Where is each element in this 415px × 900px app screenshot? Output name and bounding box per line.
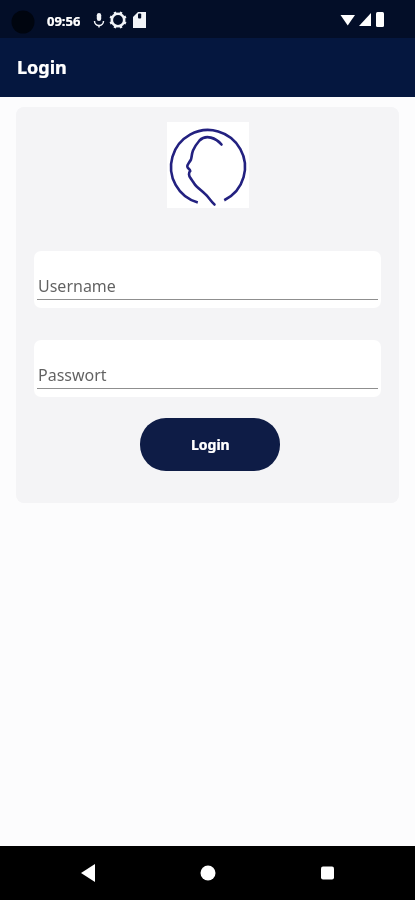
button[interactable]	[139, 846, 277, 900]
button[interactable]	[277, 846, 415, 900]
button[interactable]: Passwort	[34, 340, 381, 397]
staticText: Passwort	[38, 364, 107, 386]
button[interactable]: Username	[34, 251, 381, 308]
staticText: Login	[191, 435, 230, 454]
button[interactable]	[0, 846, 139, 900]
button[interactable]: Login	[140, 418, 280, 471]
staticText: 09:56	[47, 12, 81, 30]
staticText: Login	[17, 55, 67, 80]
staticText: Username	[38, 275, 116, 297]
